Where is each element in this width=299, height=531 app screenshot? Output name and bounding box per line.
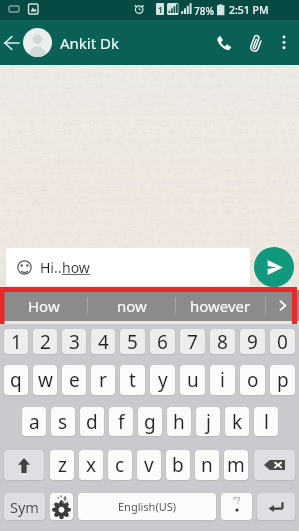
staticText: however bbox=[190, 296, 251, 316]
staticText: d bbox=[86, 409, 98, 435]
button[interactable]: l bbox=[254, 407, 278, 436]
staticText: w bbox=[38, 367, 53, 393]
button[interactable]: More options bbox=[272, 20, 296, 65]
staticText: f bbox=[118, 409, 125, 435]
staticText: “? bbox=[233, 494, 241, 506]
staticText: 5 bbox=[127, 329, 138, 354]
button[interactable]: 8 bbox=[210, 329, 235, 354]
staticText: Sym bbox=[10, 497, 39, 517]
button[interactable]: 6 bbox=[150, 329, 175, 354]
button[interactable]: 7 bbox=[180, 329, 205, 354]
button[interactable]: x bbox=[79, 450, 103, 480]
staticText: g bbox=[144, 409, 156, 435]
button[interactable]: o bbox=[240, 365, 265, 395]
staticText: o bbox=[247, 367, 259, 393]
button[interactable]: 4 bbox=[91, 329, 115, 354]
button[interactable]: Attach bbox=[240, 20, 272, 65]
button[interactable]: Hi.. bbox=[6, 248, 250, 286]
button[interactable]: Keyboard settings bbox=[50, 493, 73, 520]
staticText: 4 bbox=[98, 329, 109, 354]
button[interactable]: m bbox=[224, 450, 248, 480]
button[interactable]: k bbox=[225, 407, 249, 436]
button[interactable]: however bbox=[176, 290, 265, 321]
staticText: r bbox=[99, 367, 107, 393]
staticText: 3 bbox=[69, 329, 80, 354]
staticText: e bbox=[69, 367, 80, 393]
button[interactable]: b bbox=[166, 450, 190, 480]
staticText: now bbox=[117, 296, 147, 316]
staticText: b bbox=[172, 452, 184, 478]
button[interactable]: z bbox=[50, 450, 74, 480]
button[interactable]: Contact photo bbox=[23, 28, 52, 57]
button[interactable]: i bbox=[210, 365, 235, 395]
button[interactable]: More suggestions bbox=[266, 290, 299, 321]
staticText: how bbox=[62, 258, 90, 277]
staticText: h bbox=[173, 409, 185, 435]
staticText: i bbox=[220, 367, 225, 393]
button[interactable]: r bbox=[91, 365, 115, 395]
button[interactable]: c bbox=[108, 450, 132, 480]
staticText: u bbox=[187, 367, 199, 393]
button[interactable]: Backspace bbox=[254, 450, 295, 480]
button[interactable]: How bbox=[0, 290, 87, 321]
staticText: p bbox=[277, 367, 289, 393]
button[interactable]: u bbox=[180, 365, 205, 395]
staticText: 2 bbox=[40, 329, 51, 354]
staticText: t bbox=[129, 367, 136, 393]
button[interactable]: 5 bbox=[120, 329, 145, 354]
staticText: 1 bbox=[158, 4, 163, 15]
staticText: q bbox=[10, 367, 22, 393]
button[interactable]: s bbox=[51, 407, 75, 436]
button[interactable]: d bbox=[80, 407, 104, 436]
staticText: n bbox=[201, 452, 213, 478]
button[interactable]: y bbox=[150, 365, 175, 395]
staticText: x bbox=[86, 452, 97, 478]
staticText: 78% bbox=[194, 4, 214, 18]
button[interactable]: Send bbox=[254, 247, 294, 287]
staticText: s bbox=[58, 409, 68, 435]
button[interactable]: g bbox=[138, 407, 162, 436]
button[interactable]: now bbox=[88, 290, 175, 321]
button[interactable]: Back bbox=[0, 20, 22, 65]
button[interactable]: 1 bbox=[4, 329, 28, 354]
button[interactable]: w bbox=[33, 365, 57, 395]
staticText: k bbox=[232, 409, 243, 435]
button[interactable]: n bbox=[195, 450, 219, 480]
button[interactable]: Sym bbox=[4, 493, 45, 520]
button[interactable]: e bbox=[62, 365, 86, 395]
button[interactable]: a bbox=[22, 407, 46, 436]
staticText: v bbox=[144, 452, 154, 478]
button[interactable]: v bbox=[137, 450, 161, 480]
button[interactable]: Period bbox=[221, 493, 252, 520]
button[interactable]: 9 bbox=[240, 329, 265, 354]
button[interactable]: English(US) bbox=[78, 493, 216, 520]
button[interactable]: t bbox=[120, 365, 145, 395]
staticText: 2:51 PM bbox=[229, 3, 269, 17]
staticText: m bbox=[227, 452, 245, 478]
staticText: j bbox=[206, 409, 211, 435]
staticText: c bbox=[115, 452, 125, 478]
button[interactable]: j bbox=[196, 407, 220, 436]
button[interactable]: p bbox=[270, 365, 295, 395]
button[interactable]: 3 bbox=[62, 329, 86, 354]
staticText: 6 bbox=[157, 329, 168, 354]
button[interactable]: Voice call bbox=[208, 20, 240, 65]
staticText: 9 bbox=[247, 329, 258, 354]
staticText: How bbox=[28, 296, 60, 316]
staticText: a bbox=[29, 409, 40, 435]
button[interactable]: f bbox=[109, 407, 133, 436]
staticText: English(US) bbox=[118, 499, 177, 514]
button[interactable]: Shift bbox=[4, 450, 44, 480]
staticText: y bbox=[158, 367, 168, 393]
staticText: 1 bbox=[11, 329, 22, 354]
staticText: 8 bbox=[217, 329, 228, 354]
button[interactable]: Enter bbox=[257, 493, 295, 520]
button[interactable]: 2 bbox=[33, 329, 57, 354]
staticText: z bbox=[58, 452, 67, 478]
button[interactable]: q bbox=[4, 365, 28, 395]
staticText: l bbox=[264, 409, 269, 435]
staticText: 7 bbox=[187, 329, 198, 354]
button[interactable]: 0 bbox=[270, 329, 295, 354]
staticText: Ankit Dk bbox=[60, 33, 208, 53]
button[interactable]: h bbox=[167, 407, 191, 436]
